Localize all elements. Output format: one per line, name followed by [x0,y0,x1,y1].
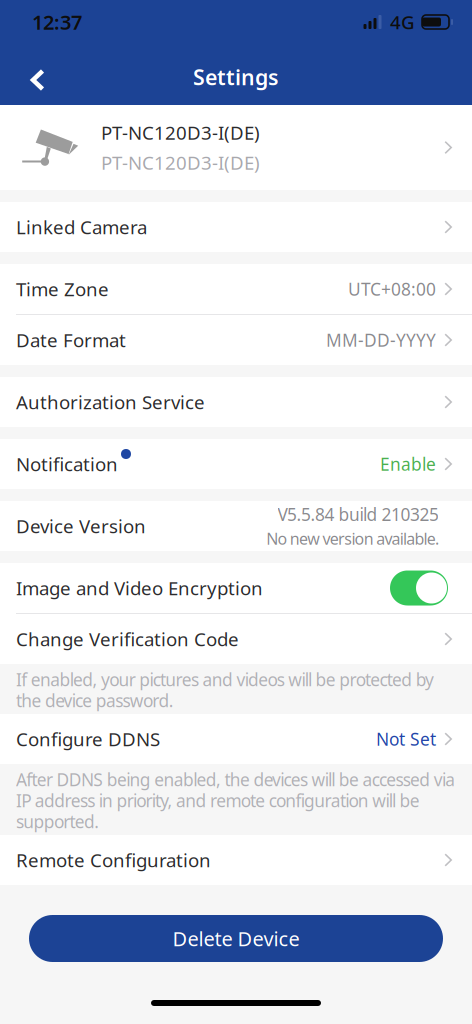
staticText: V5.5.84 build 210325 [277,503,439,526]
button[interactable]: Notification [0,439,472,489]
staticText: PT-NC120D3-I(DE) [101,120,260,145]
staticText: Change Verification Code [16,627,239,651]
staticText: 12:37 [32,9,82,35]
button[interactable]: Change Verification Code [0,614,472,664]
staticText: the device password. [16,689,174,710]
button[interactable]: Back [0,50,60,99]
staticText: Device Version [16,514,146,538]
staticText: 4G [390,10,415,34]
staticText: Notification [16,452,118,476]
staticText: PT-NC120D3-I(DE) [101,150,260,175]
button[interactable]: Time Zone [0,264,472,314]
staticText: MM-DD-YYYY [326,328,436,351]
button[interactable]: Configure DDNS [0,714,472,764]
button[interactable]: Image and Video Encryption [390,570,448,605]
staticText: Time Zone [16,277,109,301]
button[interactable]: Delete Device [0,915,472,962]
button[interactable]: Remote Configuration [0,835,472,885]
staticText: IP address in priority, and remote confi… [16,789,420,810]
staticText: supported. [16,810,99,831]
staticText: Enable [380,452,436,475]
staticText: Remote Configuration [16,848,211,872]
staticText: UTC+08:00 [348,277,436,300]
button[interactable]: Date Format [0,315,472,365]
staticText: Linked Camera [16,215,147,239]
staticText: Image and Video Encryption [16,576,263,600]
staticText: Settings [193,63,279,91]
button[interactable]: Authorization Service [0,377,472,427]
staticText: No new version available. [266,528,439,549]
staticText: Not Set [376,727,436,750]
staticText: If enabled, your pictures and videos wil… [16,668,434,689]
staticText: After DDNS being enabled, the devices wi… [16,768,455,789]
button[interactable]: Linked Camera [0,202,472,252]
staticText: Delete Device [172,925,299,952]
staticText: Date Format [16,328,126,352]
staticText: Configure DDNS [16,727,160,751]
button[interactable]: PT-NC120D3-I(DE) [0,105,472,190]
staticText: Authorization Service [16,390,205,414]
